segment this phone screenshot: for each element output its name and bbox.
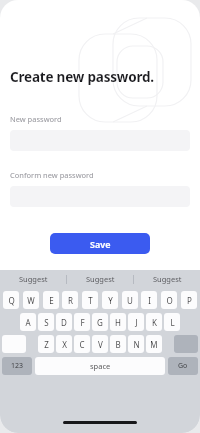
button[interactable]: Y xyxy=(102,291,118,309)
staticText: W xyxy=(27,295,35,306)
button[interactable]: U xyxy=(122,291,138,309)
button[interactable]: E xyxy=(43,291,59,309)
button[interactable]: O xyxy=(161,291,177,309)
staticText: B xyxy=(115,339,121,350)
staticText: P xyxy=(187,295,192,306)
staticText: Suggest xyxy=(19,274,48,284)
button[interactable]: Go xyxy=(168,357,198,375)
button[interactable]: H xyxy=(110,313,126,331)
staticText: Y xyxy=(108,295,113,306)
button[interactable]: space xyxy=(35,357,165,375)
staticText: S xyxy=(44,317,49,328)
staticText: L xyxy=(170,317,175,328)
staticText: M xyxy=(150,339,158,350)
staticText: Save xyxy=(90,238,111,250)
button[interactable]: Suggest xyxy=(0,274,66,284)
staticText: Conform new password xyxy=(10,170,94,180)
button[interactable]: B xyxy=(110,335,126,353)
button[interactable]: Suggest xyxy=(134,274,200,284)
button[interactable]: A xyxy=(20,313,36,331)
button[interactable]: Shift xyxy=(2,335,26,353)
staticText: R xyxy=(68,295,73,306)
staticText: New password xyxy=(10,114,62,124)
button[interactable]: M xyxy=(146,335,162,353)
button[interactable]: Backspace xyxy=(174,335,198,353)
button[interactable]: K xyxy=(146,313,162,331)
staticText: space xyxy=(90,361,111,371)
button[interactable]: Save xyxy=(50,233,150,254)
button[interactable]: W xyxy=(23,291,39,309)
button[interactable]: R xyxy=(62,291,78,309)
button[interactable]: 123 xyxy=(2,357,32,375)
button[interactable]: S xyxy=(38,313,54,331)
staticText: J xyxy=(135,317,138,328)
staticText: Q xyxy=(8,295,15,306)
button[interactable]: F xyxy=(74,313,90,331)
button[interactable]: D xyxy=(56,313,72,331)
staticText: O xyxy=(166,295,173,306)
staticText: G xyxy=(97,317,103,328)
staticText: K xyxy=(152,317,157,328)
staticText: H xyxy=(115,317,121,328)
staticText: F xyxy=(80,317,85,328)
staticText: Go xyxy=(178,361,188,371)
staticText: E xyxy=(49,295,54,306)
staticText: A xyxy=(25,317,31,328)
staticText: T xyxy=(88,295,93,306)
staticText: N xyxy=(133,339,140,350)
button[interactable]: X xyxy=(56,335,72,353)
staticText: V xyxy=(98,339,103,350)
button[interactable]: N xyxy=(128,335,144,353)
button[interactable]: J xyxy=(128,313,144,331)
staticText: Create new password. xyxy=(10,68,154,86)
staticText: C xyxy=(79,339,85,350)
staticText: U xyxy=(127,295,133,306)
staticText: X xyxy=(62,339,67,350)
button[interactable]: P xyxy=(181,291,197,309)
staticText: I xyxy=(148,295,151,306)
button[interactable]: Q xyxy=(3,291,19,309)
staticText: Suggest xyxy=(153,274,182,284)
button[interactable]: V xyxy=(92,335,108,353)
button[interactable]: C xyxy=(74,335,90,353)
button[interactable]: L xyxy=(164,313,180,331)
button[interactable]: T xyxy=(82,291,98,309)
staticText: Z xyxy=(44,339,49,350)
button[interactable]: Z xyxy=(38,335,54,353)
staticText: 123 xyxy=(11,361,24,371)
button[interactable]: G xyxy=(92,313,108,331)
staticText: Suggest xyxy=(86,274,115,284)
staticText: D xyxy=(61,317,67,328)
button[interactable]: Suggest xyxy=(67,274,133,284)
button[interactable]: I xyxy=(141,291,157,309)
